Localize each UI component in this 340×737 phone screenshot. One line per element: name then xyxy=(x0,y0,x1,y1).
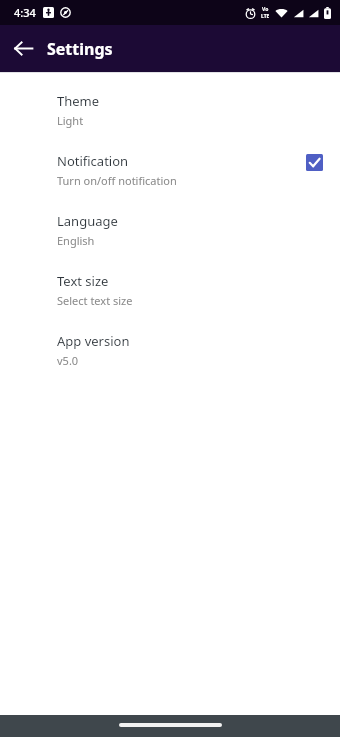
staticText: 4:34 xyxy=(14,5,36,20)
button[interactable]: Text size xyxy=(0,266,340,326)
staticText: LTE xyxy=(261,13,270,20)
button[interactable]: Notification xyxy=(0,146,340,206)
staticText: v5.0 xyxy=(57,353,79,368)
staticText: Settings xyxy=(47,38,113,60)
button[interactable]: Language xyxy=(0,206,340,266)
button[interactable]: Toggle notification xyxy=(306,154,323,171)
button[interactable]: Back xyxy=(6,31,41,66)
button[interactable]: Theme xyxy=(0,86,340,146)
staticText: Text size xyxy=(57,272,109,290)
staticText: Notification xyxy=(57,152,129,170)
staticText: App version xyxy=(57,332,130,350)
staticText: Select text size xyxy=(57,293,133,308)
staticText: Turn on/off notification xyxy=(57,173,177,188)
staticText: Vo xyxy=(262,6,269,13)
staticText: Language xyxy=(57,212,118,230)
staticText: English xyxy=(57,233,95,248)
button[interactable]: App version xyxy=(0,326,340,386)
staticText: Theme xyxy=(57,92,100,110)
staticText: Light xyxy=(57,113,84,128)
